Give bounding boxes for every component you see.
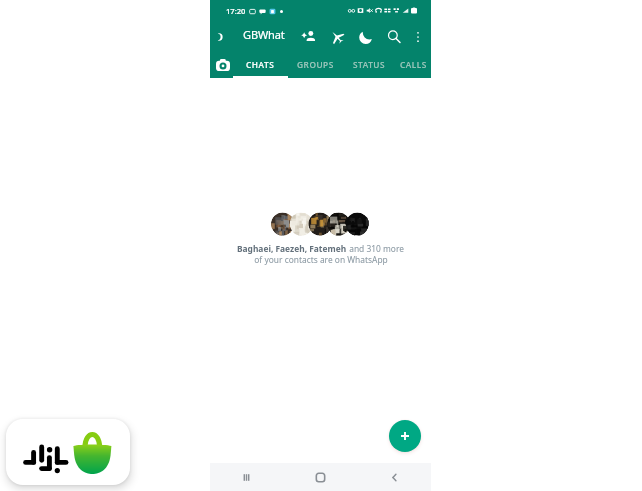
button[interactable]: Add contact: [298, 26, 320, 48]
button[interactable]: Search: [383, 26, 405, 48]
button[interactable]: More options: [407, 26, 429, 48]
button[interactable]: STATUS: [343, 53, 395, 78]
button[interactable]: CALLS: [387, 53, 439, 78]
button[interactable]: CHATS: [234, 53, 286, 78]
button[interactable]: Recent apps: [210, 463, 283, 491]
staticText: Baghaei, Faezeh, Fatemeh: [237, 243, 347, 254]
staticText: 17:20: [226, 6, 246, 16]
staticText: of your contacts are on WhatsApp: [254, 254, 388, 265]
staticText: CHATS: [246, 59, 275, 70]
staticText: GROUPS: [297, 59, 334, 70]
button[interactable]: Camera: [213, 55, 233, 75]
button[interactable]: New chat: [389, 420, 421, 452]
staticText: and 310 more: [347, 243, 404, 254]
button[interactable]: Open navigation: [214, 30, 228, 44]
staticText: CALLS: [400, 59, 427, 70]
button[interactable]: Back: [357, 463, 431, 491]
staticText: STATUS: [353, 59, 386, 70]
button[interactable]: Dark mode: [355, 26, 377, 48]
staticText: GBWhat: [243, 27, 285, 42]
button[interactable]: GROUPS: [289, 53, 341, 78]
button[interactable]: Home: [283, 463, 357, 491]
button[interactable]: Bazaar: [6, 419, 130, 485]
button[interactable]: Airplane mode: [326, 26, 348, 48]
